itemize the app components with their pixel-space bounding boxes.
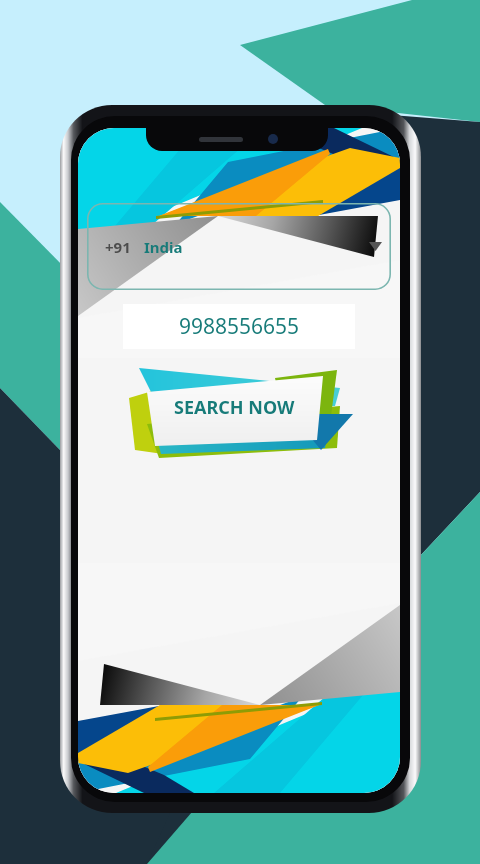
button[interactable]: +91	[87, 203, 391, 290]
staticText: SEARCH NOW	[174, 395, 295, 420]
staticText: India	[144, 237, 183, 257]
button[interactable]: 9988556655	[123, 304, 355, 349]
other: Select country	[369, 242, 382, 251]
button[interactable]: SEARCH NOW	[125, 358, 355, 458]
staticText: +91	[105, 237, 131, 257]
staticText: 9988556655	[179, 312, 300, 341]
